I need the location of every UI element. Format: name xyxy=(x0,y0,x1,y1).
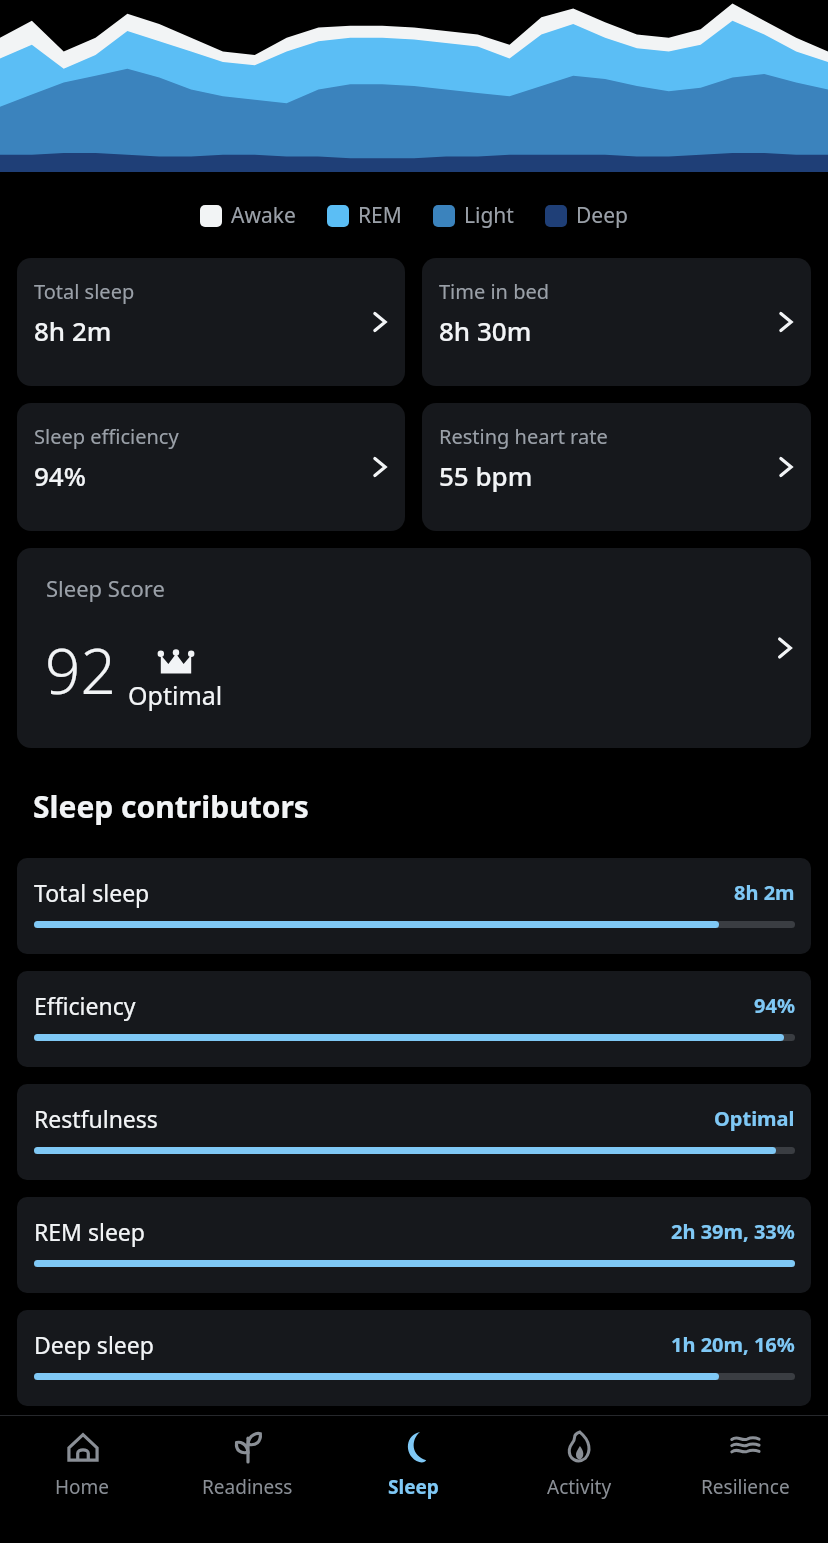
button[interactable]: Restfulness xyxy=(17,1084,811,1180)
button[interactable]: Efficiency xyxy=(17,971,811,1067)
staticText: Restfulness xyxy=(34,1103,714,1134)
staticText: Deep xyxy=(576,201,628,230)
button[interactable]: Resilience xyxy=(662,1425,828,1500)
staticText: Sleep efficiency xyxy=(34,423,179,450)
staticText: Deep sleep xyxy=(34,1329,671,1360)
staticText: 55 bpm xyxy=(439,458,533,493)
staticText: Readiness xyxy=(202,1474,293,1500)
button[interactable]: Resting heart rate xyxy=(422,403,811,531)
staticText: Sleep Score xyxy=(46,573,165,603)
staticText: 8h 2m xyxy=(34,313,112,348)
staticText: Optimal xyxy=(128,678,223,712)
button[interactable]: Home xyxy=(0,1425,165,1500)
staticText: Total sleep xyxy=(34,877,734,908)
staticText: REM xyxy=(358,201,402,230)
button[interactable]: REM sleep xyxy=(17,1197,811,1293)
staticText: Sleep xyxy=(388,1474,439,1500)
staticText: Awake xyxy=(231,201,296,230)
button[interactable]: Readiness xyxy=(165,1425,330,1500)
button[interactable]: Time in bed xyxy=(422,258,811,386)
staticText: Light xyxy=(464,201,514,230)
button[interactable]: Sleep Score xyxy=(17,548,811,748)
staticText: 94% xyxy=(754,992,795,1019)
staticText: REM sleep xyxy=(34,1216,671,1247)
button[interactable]: Activity xyxy=(496,1425,662,1500)
staticText: Activity xyxy=(547,1474,612,1500)
button[interactable]: Sleep efficiency xyxy=(17,403,405,531)
staticText: 1h 20m, 16% xyxy=(671,1331,795,1358)
staticText: Optimal xyxy=(714,1105,795,1132)
staticText: Total sleep xyxy=(34,278,135,305)
staticText: Home xyxy=(55,1474,110,1500)
staticText: Resilience xyxy=(701,1474,790,1500)
staticText: Efficiency xyxy=(34,990,754,1021)
button[interactable]: Deep sleep xyxy=(17,1310,811,1406)
button[interactable]: Total sleep xyxy=(17,258,405,386)
button[interactable]: Sleep xyxy=(330,1425,496,1500)
staticText: 8h 2m xyxy=(734,879,795,906)
button[interactable]: Total sleep xyxy=(17,858,811,954)
staticText: Resting heart rate xyxy=(439,423,608,450)
staticText: Sleep contributors xyxy=(33,786,309,827)
staticText: Time in bed xyxy=(439,278,550,305)
staticText: 8h 30m xyxy=(439,313,532,348)
staticText: 92 xyxy=(45,628,116,712)
staticText: 2h 39m, 33% xyxy=(671,1218,795,1245)
staticText: 94% xyxy=(34,458,86,493)
